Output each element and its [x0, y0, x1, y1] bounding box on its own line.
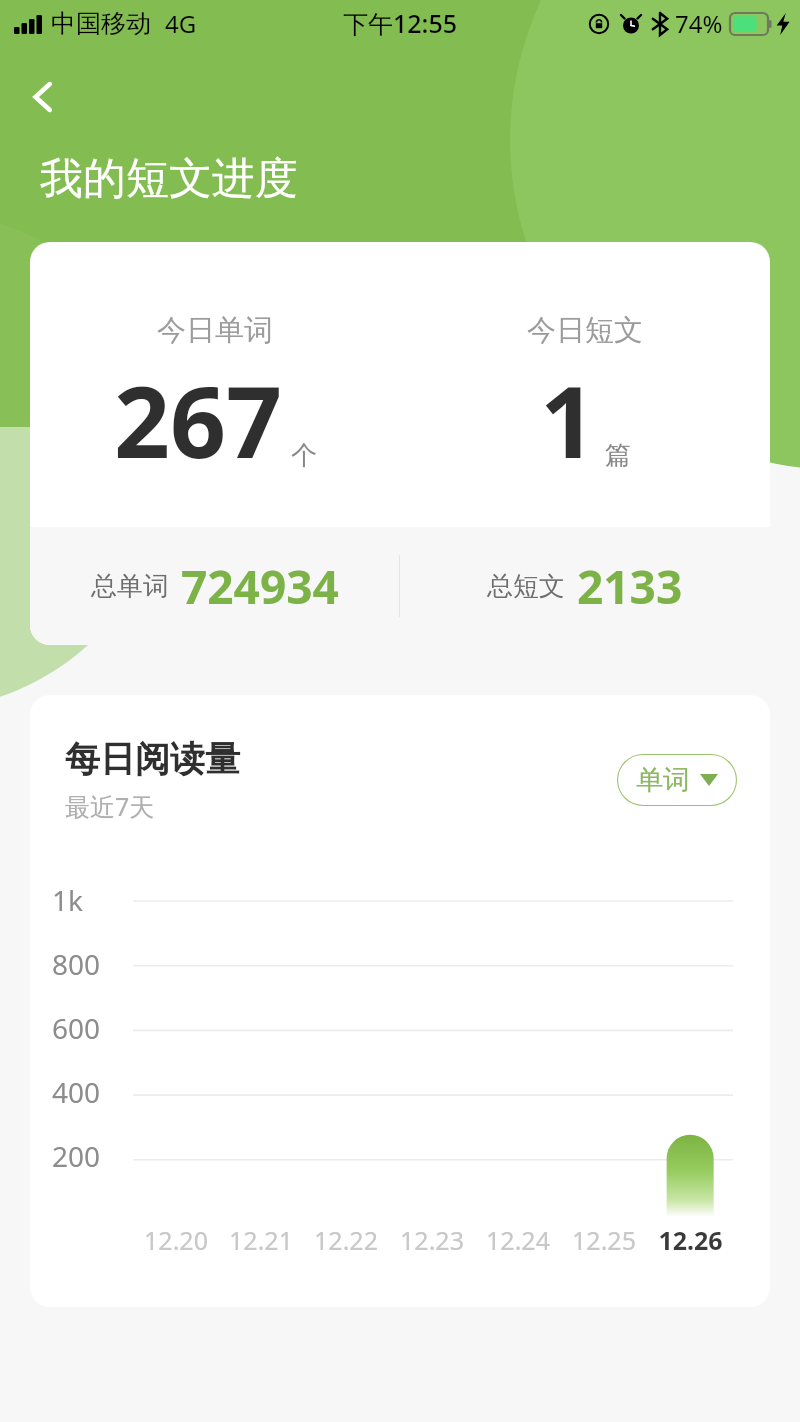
staticText: 1 — [540, 353, 597, 486]
staticText: 800 — [52, 945, 101, 983]
staticText: 400 — [52, 1073, 101, 1111]
staticText: 12.22 — [314, 1223, 378, 1257]
staticText: 12.21 — [229, 1223, 293, 1257]
staticText: 12.25 — [572, 1223, 636, 1257]
button[interactable]: 单词 — [617, 754, 737, 806]
button[interactable]: Back — [12, 66, 74, 128]
staticText: 12.26 — [658, 1223, 723, 1257]
staticText: 600 — [52, 1009, 101, 1047]
staticText: 下午12:55 — [343, 6, 458, 40]
staticText: 每日阅读量 — [65, 737, 240, 781]
staticText: 中国移动 — [51, 8, 151, 39]
staticText: 总短文 — [487, 570, 565, 603]
button[interactable]: 今日单词 — [30, 242, 770, 645]
staticText: 今日单词 — [157, 312, 273, 349]
staticText: 200 — [52, 1137, 101, 1175]
staticText: 4G — [165, 7, 197, 40]
staticText: 12.23 — [400, 1223, 464, 1257]
staticText: 724934 — [181, 555, 339, 618]
staticText: 1k — [52, 881, 83, 919]
staticText: 篇 — [605, 439, 631, 472]
staticText: 单词 — [636, 763, 690, 797]
staticText: 12.20 — [144, 1223, 208, 1257]
staticText: 267 — [114, 353, 283, 486]
staticText: 个 — [291, 439, 317, 472]
staticText: 总单词 — [91, 570, 169, 603]
staticText: 我的短文进度 — [40, 152, 298, 206]
staticText: 74% — [675, 7, 723, 40]
staticText: 2133 — [577, 555, 683, 618]
staticText: 最近7天 — [65, 789, 155, 823]
staticText: 今日短文 — [527, 312, 643, 349]
staticText: 12.24 — [486, 1223, 550, 1257]
